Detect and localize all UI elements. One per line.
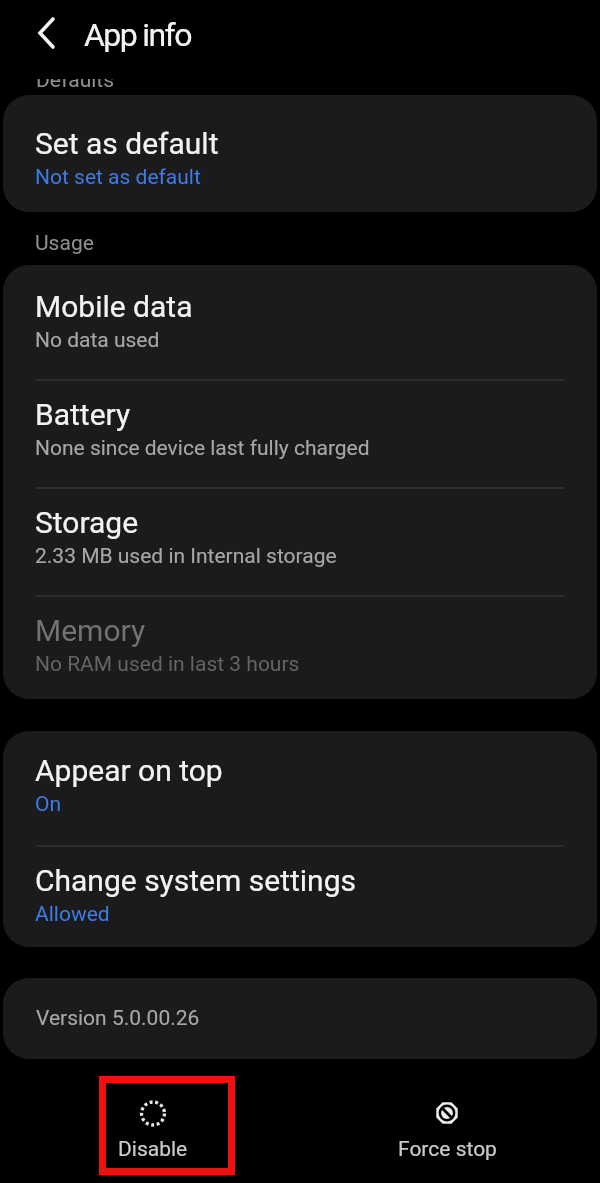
staticText: App info xyxy=(84,16,191,54)
staticText: No RAM used in last 3 hours xyxy=(35,652,300,677)
button[interactable]: Storage xyxy=(3,489,597,595)
staticText: Not set as default xyxy=(35,165,201,190)
staticText: Set as default xyxy=(35,126,219,161)
button[interactable]: Disable xyxy=(93,1076,213,1175)
staticText: Usage xyxy=(35,231,94,256)
staticText: Appear on top xyxy=(35,753,223,788)
button[interactable]: Set as default xyxy=(3,95,597,212)
button[interactable] xyxy=(24,11,68,55)
staticText: No data used xyxy=(35,328,160,353)
staticText: Version 5.0.00.26 xyxy=(36,1006,200,1031)
staticText: Defaults xyxy=(36,79,115,89)
button[interactable]: Mobile data xyxy=(3,265,597,379)
staticText: 2.33 MB used in Internal storage xyxy=(35,544,337,569)
staticText: Memory xyxy=(35,613,146,648)
staticText: Mobile data xyxy=(35,289,193,324)
button[interactable]: Memory xyxy=(3,597,597,699)
button[interactable]: Force stop xyxy=(387,1076,507,1175)
button[interactable]: Battery xyxy=(3,381,597,487)
staticText: Storage xyxy=(35,505,139,540)
button[interactable]: Change system settings xyxy=(3,847,597,947)
staticText: Force stop xyxy=(398,1137,497,1162)
staticText: Allowed xyxy=(35,902,110,927)
staticText: None since device last fully charged xyxy=(35,436,370,461)
staticText: On xyxy=(35,792,62,817)
staticText: Change system settings xyxy=(35,863,356,898)
staticText: Disable xyxy=(118,1137,188,1162)
staticText: Battery xyxy=(35,397,131,432)
button[interactable]: Appear on top xyxy=(3,731,597,845)
